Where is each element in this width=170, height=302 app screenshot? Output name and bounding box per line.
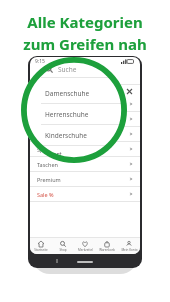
button[interactable]: Warenkorb bbox=[96, 238, 118, 254]
staticText: Suche bbox=[58, 65, 77, 74]
staticText: Kinderschuhe bbox=[45, 131, 88, 140]
staticText: Startseite bbox=[34, 248, 48, 252]
button[interactable]: Shop bbox=[52, 238, 74, 254]
button[interactable]: Sale % bbox=[30, 187, 140, 201]
staticText: Taschen bbox=[37, 161, 58, 168]
staticText: Warenkorb bbox=[99, 248, 115, 252]
staticText: Herrenschuhe bbox=[37, 116, 74, 123]
staticText: Alle Kategorien bbox=[27, 12, 143, 32]
button[interactable]: Damenschuhe bbox=[21, 83, 127, 103]
staticText: Shop bbox=[59, 248, 67, 252]
button[interactable]: Premium bbox=[30, 172, 140, 186]
button[interactable]: Herrenschuhe bbox=[30, 112, 140, 126]
button[interactable]: Sport bbox=[21, 146, 127, 163]
staticText: Damenschuhe bbox=[37, 101, 75, 108]
button[interactable]: Mein Konto bbox=[118, 238, 140, 254]
staticText: Sport bbox=[45, 150, 62, 159]
button[interactable]: Suche bbox=[30, 66, 140, 84]
staticText: Merkzettel bbox=[78, 248, 93, 252]
button[interactable]: Taschen bbox=[30, 157, 140, 171]
button[interactable]: Damenschuhe bbox=[30, 97, 140, 111]
staticText: Sport bbox=[37, 146, 51, 153]
button[interactable]: Merkzettel bbox=[74, 238, 96, 254]
button[interactable]: Kinderschuhe bbox=[30, 127, 140, 141]
button[interactable]: Sport bbox=[30, 142, 140, 156]
staticText: Sale % bbox=[37, 191, 54, 198]
staticText: Mein Konto bbox=[121, 248, 138, 252]
staticText: Kinderschuhe bbox=[37, 131, 73, 138]
button[interactable]: Herrenschuhe bbox=[21, 104, 127, 124]
staticText: 9:15 bbox=[35, 58, 45, 65]
staticText: zum Greifen nah bbox=[23, 34, 147, 54]
button[interactable]: Schließen bbox=[125, 87, 134, 96]
staticText: Premium bbox=[37, 176, 61, 183]
staticText: Damenschuhe bbox=[45, 89, 90, 98]
button[interactable]: Startseite bbox=[30, 238, 52, 254]
button[interactable]: Kinderschuhe bbox=[21, 125, 127, 145]
staticText: Suche bbox=[48, 71, 65, 79]
staticText: Herrenschuhe bbox=[45, 110, 89, 119]
